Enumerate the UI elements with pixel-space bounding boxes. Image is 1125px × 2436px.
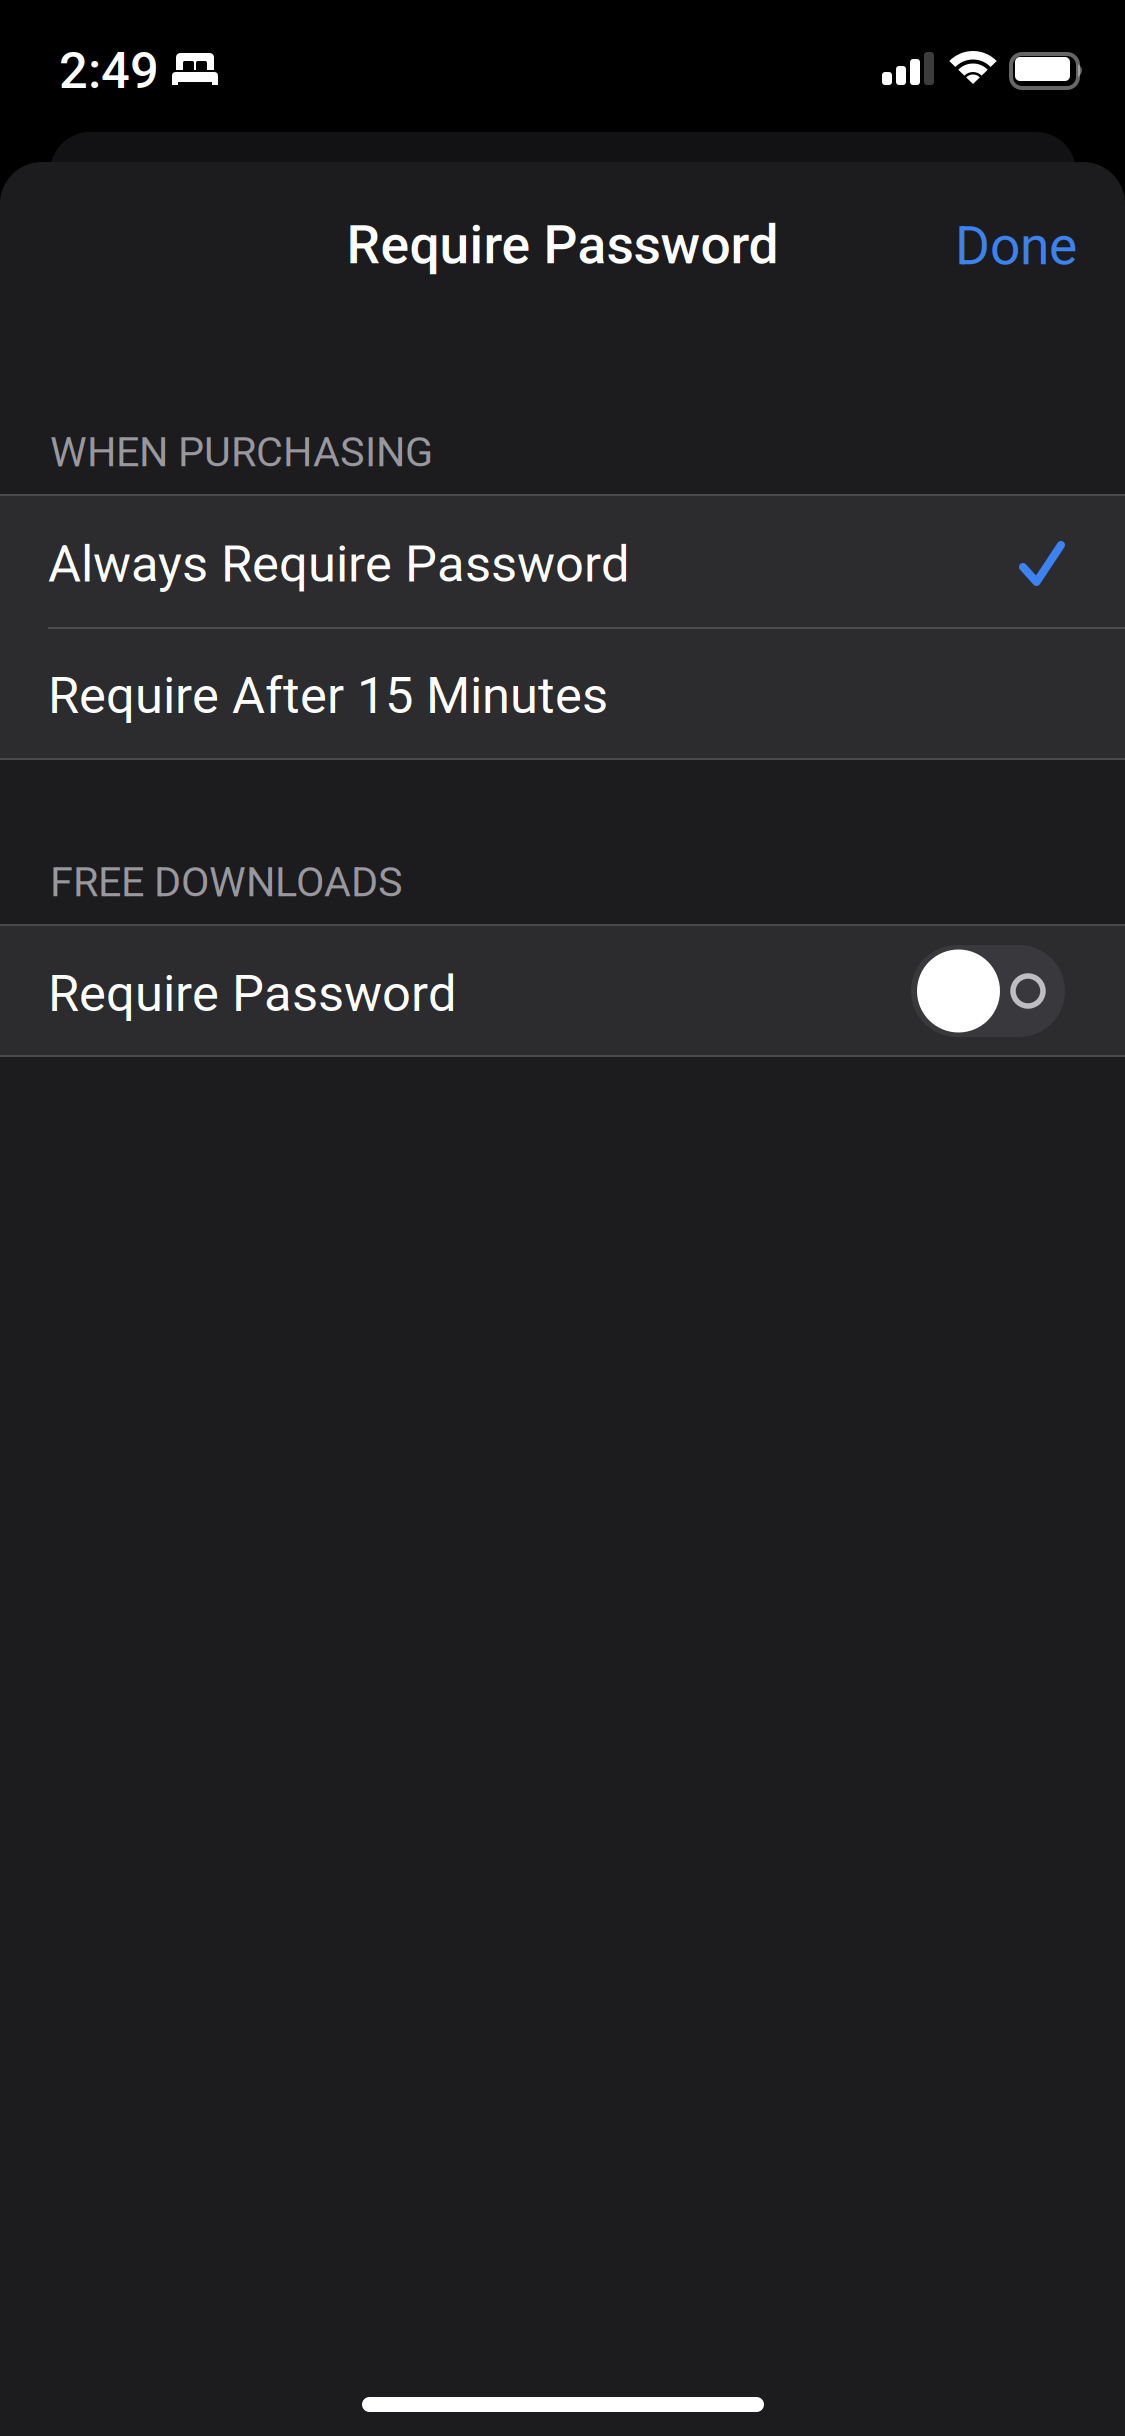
staticText: Require After 15 Minutes — [48, 666, 608, 725]
staticText: Done — [955, 215, 1077, 277]
button[interactable]: Require After 15 Minutes — [0, 627, 1125, 759]
button[interactable]: Always Require Password — [0, 496, 1125, 627]
button[interactable]: Require Password — [0, 926, 1125, 1056]
staticText: FREE DOWNLOADS — [50, 858, 403, 906]
staticText: WHEN PURCHASING — [50, 428, 433, 476]
button[interactable]: Done — [885, 190, 1125, 302]
staticText: Always Require Password — [48, 534, 630, 594]
staticText: Require Password — [346, 214, 778, 276]
staticText: 2:49 — [59, 41, 159, 100]
staticText: Require Password — [48, 964, 457, 1023]
